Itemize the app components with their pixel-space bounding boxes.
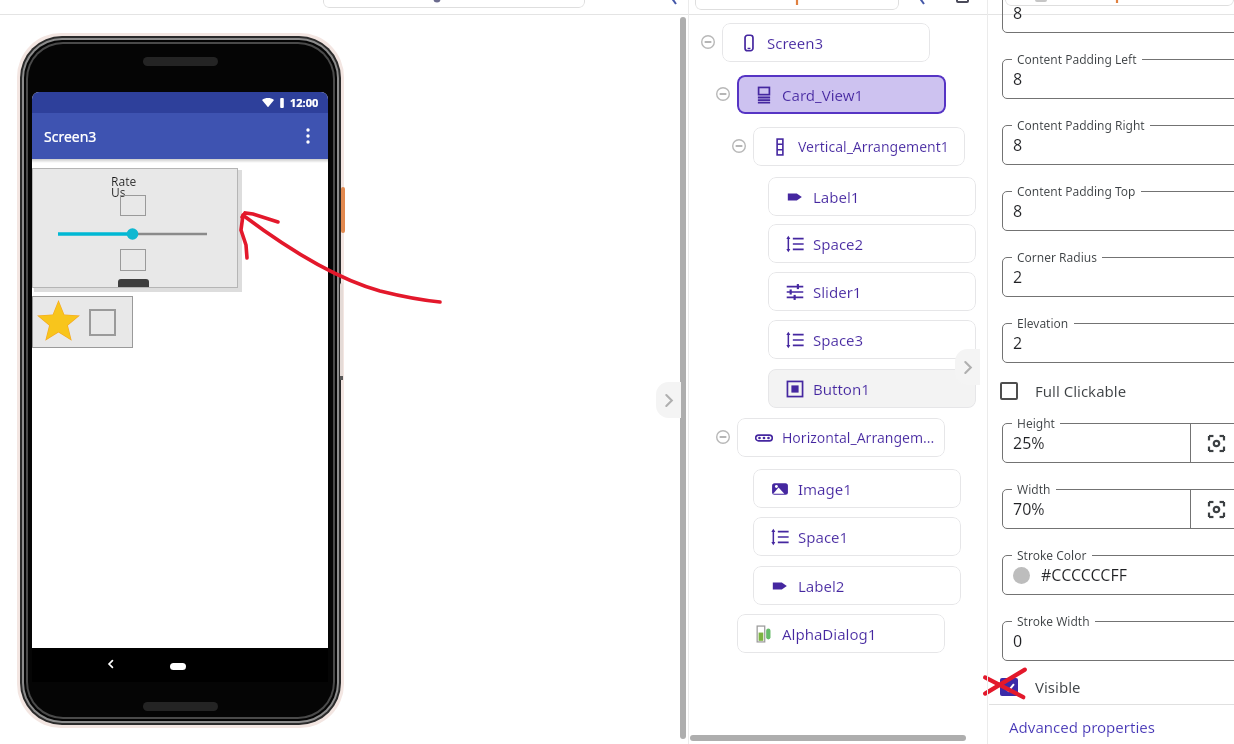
staticText: 8 [1013,68,1023,90]
button[interactable]: Pick Height [1190,423,1234,463]
button[interactable]: Rate Us [32,168,238,288]
staticText: #CCCCCCFF [1041,564,1128,586]
staticText: Elevation [1017,315,1069,331]
staticText: Horizontal_Arrangem... [782,428,935,447]
button[interactable]: Expand left panel [656,382,681,418]
staticText: Full Clickable [1035,381,1127,401]
staticText: Label1 [813,187,860,207]
button[interactable]: Collapse Card_View1 [716,87,730,101]
button[interactable]: Back [105,658,117,670]
button[interactable]: 2 [1002,257,1234,297]
staticText: Space2 [813,234,864,254]
staticText: Card_View1 [782,85,864,105]
button[interactable]: AlphaDialog1 [737,614,945,653]
button[interactable]: Screen3 [722,23,930,62]
staticText: Corner Radius [1017,249,1097,265]
button[interactable]: Image1 [753,469,961,508]
staticText: 8 [1013,134,1023,156]
staticText: Height [1017,415,1055,431]
staticText: 8 [1013,200,1023,222]
staticText: Image1 [798,479,852,499]
button[interactable]: More options [296,124,320,148]
button[interactable]: Full Clickable [1000,376,1230,406]
button[interactable]: Collapse Horizontal_Arrangem... [716,430,730,444]
staticText: Rate Us [111,173,141,201]
staticText: 12:00 [290,95,319,110]
button[interactable]: Component search [695,0,899,10]
button[interactable]: Label1 [768,177,976,216]
staticText: Space1 [798,527,849,547]
button[interactable] [118,279,149,288]
button[interactable]: Card_View1 [737,75,946,114]
button[interactable]: Horizontal_Arrangem... [737,418,945,457]
staticText: Stroke Color [1017,547,1087,563]
staticText: Vertical_Arrangement1 [798,137,949,156]
staticText: Space3 [813,330,864,350]
button[interactable]: Space1 [753,517,961,556]
button[interactable]: Collapse Vertical_Arrangement1 [732,139,746,153]
button[interactable]: 8 [1002,59,1234,99]
staticText: Screen3 [44,127,97,146]
staticText: 8 [1013,2,1023,24]
staticText: Content Padding Top [1017,183,1136,199]
button[interactable]: Slider1 [768,272,976,311]
button[interactable]: Expand right panel [955,349,980,385]
button[interactable]: Button1 [768,369,976,408]
button[interactable]: 0 [1002,621,1234,661]
button[interactable]: Home [170,663,186,670]
button[interactable]: Space3 [768,320,976,359]
button[interactable]: 8 [1002,0,1234,33]
staticText: Content Padding Left [1017,51,1137,67]
staticText: 70% [1013,498,1045,520]
staticText: Slider1 [813,282,862,302]
staticText: Content Padding Right [1017,117,1145,133]
staticText: Screen3 [767,33,824,53]
staticText: AlphaDialog1 [782,624,877,644]
button[interactable]: Space2 [768,224,976,263]
staticText: Width [1017,481,1051,497]
button[interactable]: Vertical_Arrangement1 [753,127,965,166]
button[interactable]: #CCCCCCFF [1002,555,1234,595]
button[interactable]: Label2 [753,566,961,605]
button[interactable]: Collapse Screen3 [701,35,715,49]
staticText: 2 [1013,266,1023,288]
button[interactable]: 8 [1002,191,1234,231]
staticText: Label2 [798,576,845,596]
staticText: Button1 [813,379,870,399]
button[interactable]: 2 [1002,323,1234,363]
staticText: 2 [1013,332,1023,354]
staticText: 25% [1013,432,1045,454]
button[interactable]: Advanced properties [1009,717,1155,737]
button[interactable]: Screen selector [323,0,585,8]
button[interactable] [32,296,133,348]
staticText: 0 [1013,630,1023,652]
button[interactable]: Pick Width [1190,489,1234,529]
staticText: Stroke Width [1017,613,1090,629]
button[interactable]: Visible [1000,671,1230,702]
staticText: Visible [1035,677,1081,697]
button[interactable]: 8 [1002,125,1234,165]
